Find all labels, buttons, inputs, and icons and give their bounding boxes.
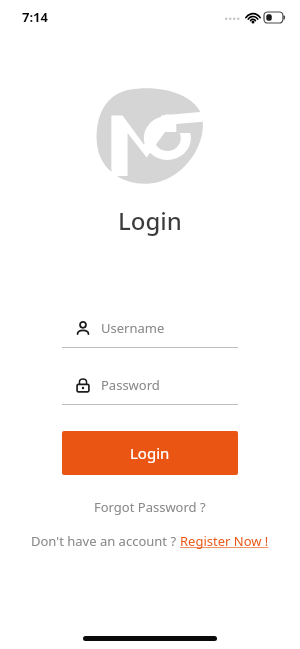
- button[interactable]: Username: [62, 313, 238, 348]
- staticText: Username: [101, 319, 165, 337]
- staticText: Login: [130, 443, 170, 463]
- button[interactable]: Password: [62, 370, 238, 405]
- staticText: Password: [101, 376, 160, 394]
- staticText: Login: [118, 204, 182, 237]
- other: MC logo: [94, 86, 206, 186]
- button[interactable]: Register Now !: [180, 532, 269, 550]
- staticText: Don't have an account ?: [31, 532, 180, 550]
- staticText: 7:14: [22, 8, 48, 26]
- button[interactable]: Login: [62, 431, 238, 475]
- button[interactable]: Forgot Password ?: [94, 498, 206, 516]
- staticText: Forgot Password ?: [94, 498, 206, 516]
- staticText: Register Now !: [180, 532, 269, 550]
